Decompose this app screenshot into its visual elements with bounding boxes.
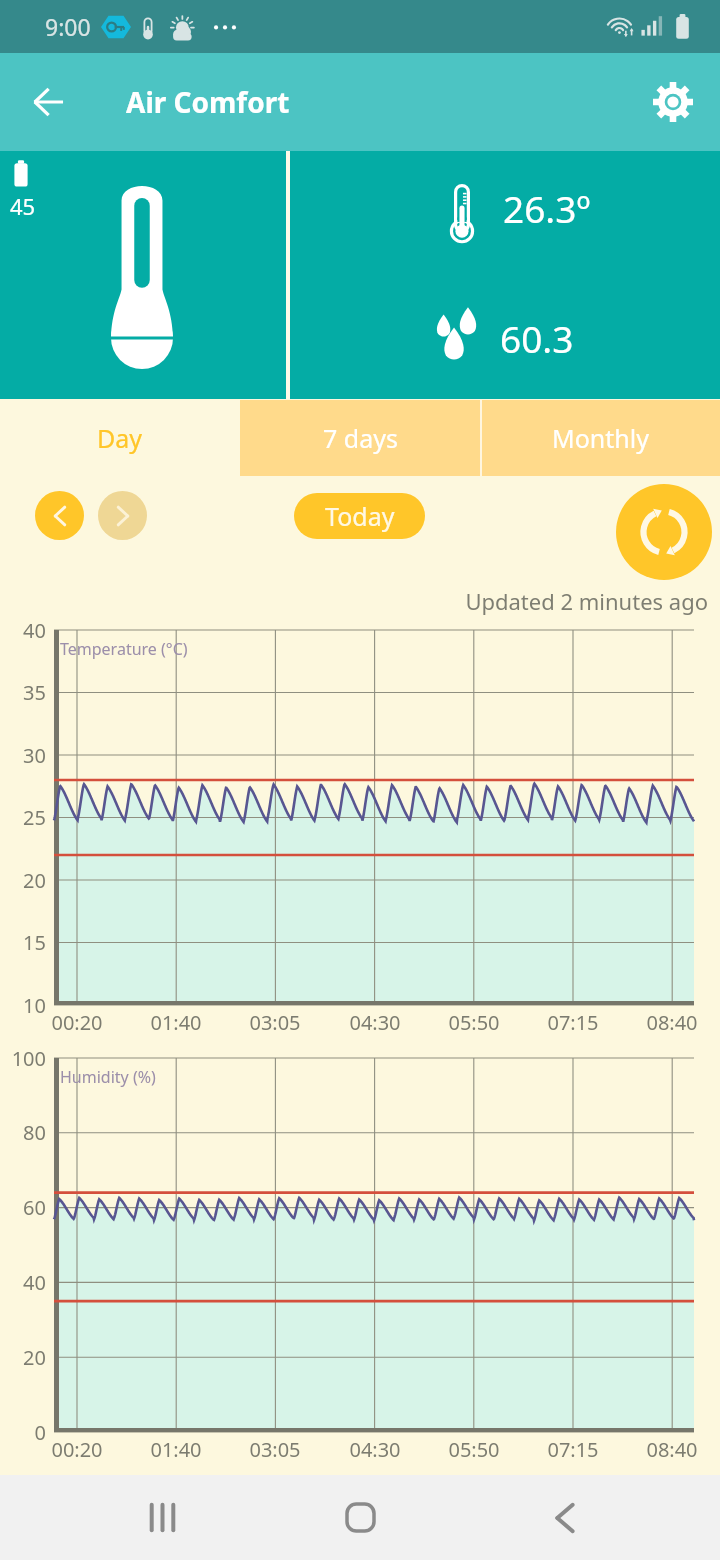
staticText: 40 [0,617,46,644]
button[interactable]: Next [98,491,147,540]
staticText: 60 [0,1194,46,1221]
button[interactable]: Day [0,400,240,476]
staticText: 0 [0,1419,46,1446]
staticText: 80 [0,1119,46,1146]
staticText: 08:40 [632,1436,712,1463]
staticText: 00:20 [37,1009,117,1036]
staticText: 60.3 % [500,313,582,369]
staticText: 01:40 [136,1436,216,1463]
staticText: Day [97,421,143,455]
staticText: 08:40 [632,1009,712,1036]
staticText: Air Comfort [126,83,290,121]
staticText: 03:05 [235,1436,315,1463]
staticText: 15 [0,929,46,956]
staticText: 07:15 [533,1009,613,1036]
button[interactable]: Today [294,493,425,539]
staticText: 05:50 [434,1436,514,1463]
staticText: 03:05 [235,1009,315,1036]
staticText: 26.3º C [503,183,593,239]
staticText: 00:20 [37,1436,117,1463]
staticText: 10 [0,992,46,1019]
button[interactable]: Home [320,1480,400,1555]
button[interactable]: Monthly [480,400,720,476]
button[interactable]: Refresh [616,484,712,580]
staticText: 35 [0,679,46,706]
staticText: 05:50 [434,1009,514,1036]
staticText: 40 [0,1269,46,1296]
button[interactable]: Back [525,1480,605,1555]
staticText: 04:30 [335,1009,415,1036]
staticText: 9:00 [45,11,91,42]
button[interactable]: Recents [122,1480,202,1555]
staticText: Monthly [552,421,649,455]
staticText: 20 [0,1344,46,1371]
staticText: 7 days [323,421,398,455]
staticText: 30 [0,742,46,769]
staticText: 07:15 [533,1436,613,1463]
staticText: 100 [0,1045,46,1072]
staticText: Today [325,499,395,533]
staticText: Humidity (%) [60,1066,156,1088]
staticText: 25 [0,804,46,831]
staticText: 45 [10,191,36,221]
staticText: 04:30 [335,1436,415,1463]
staticText: 20 [0,867,46,894]
staticText: 01:40 [136,1009,216,1036]
button[interactable]: Back [18,72,78,132]
staticText: Temperature (°C) [60,638,188,660]
button[interactable]: 7 days [240,400,480,476]
button[interactable]: Settings [644,73,702,131]
staticText: Updated 2 minutes ago [300,586,708,616]
button[interactable]: Previous [35,491,84,540]
